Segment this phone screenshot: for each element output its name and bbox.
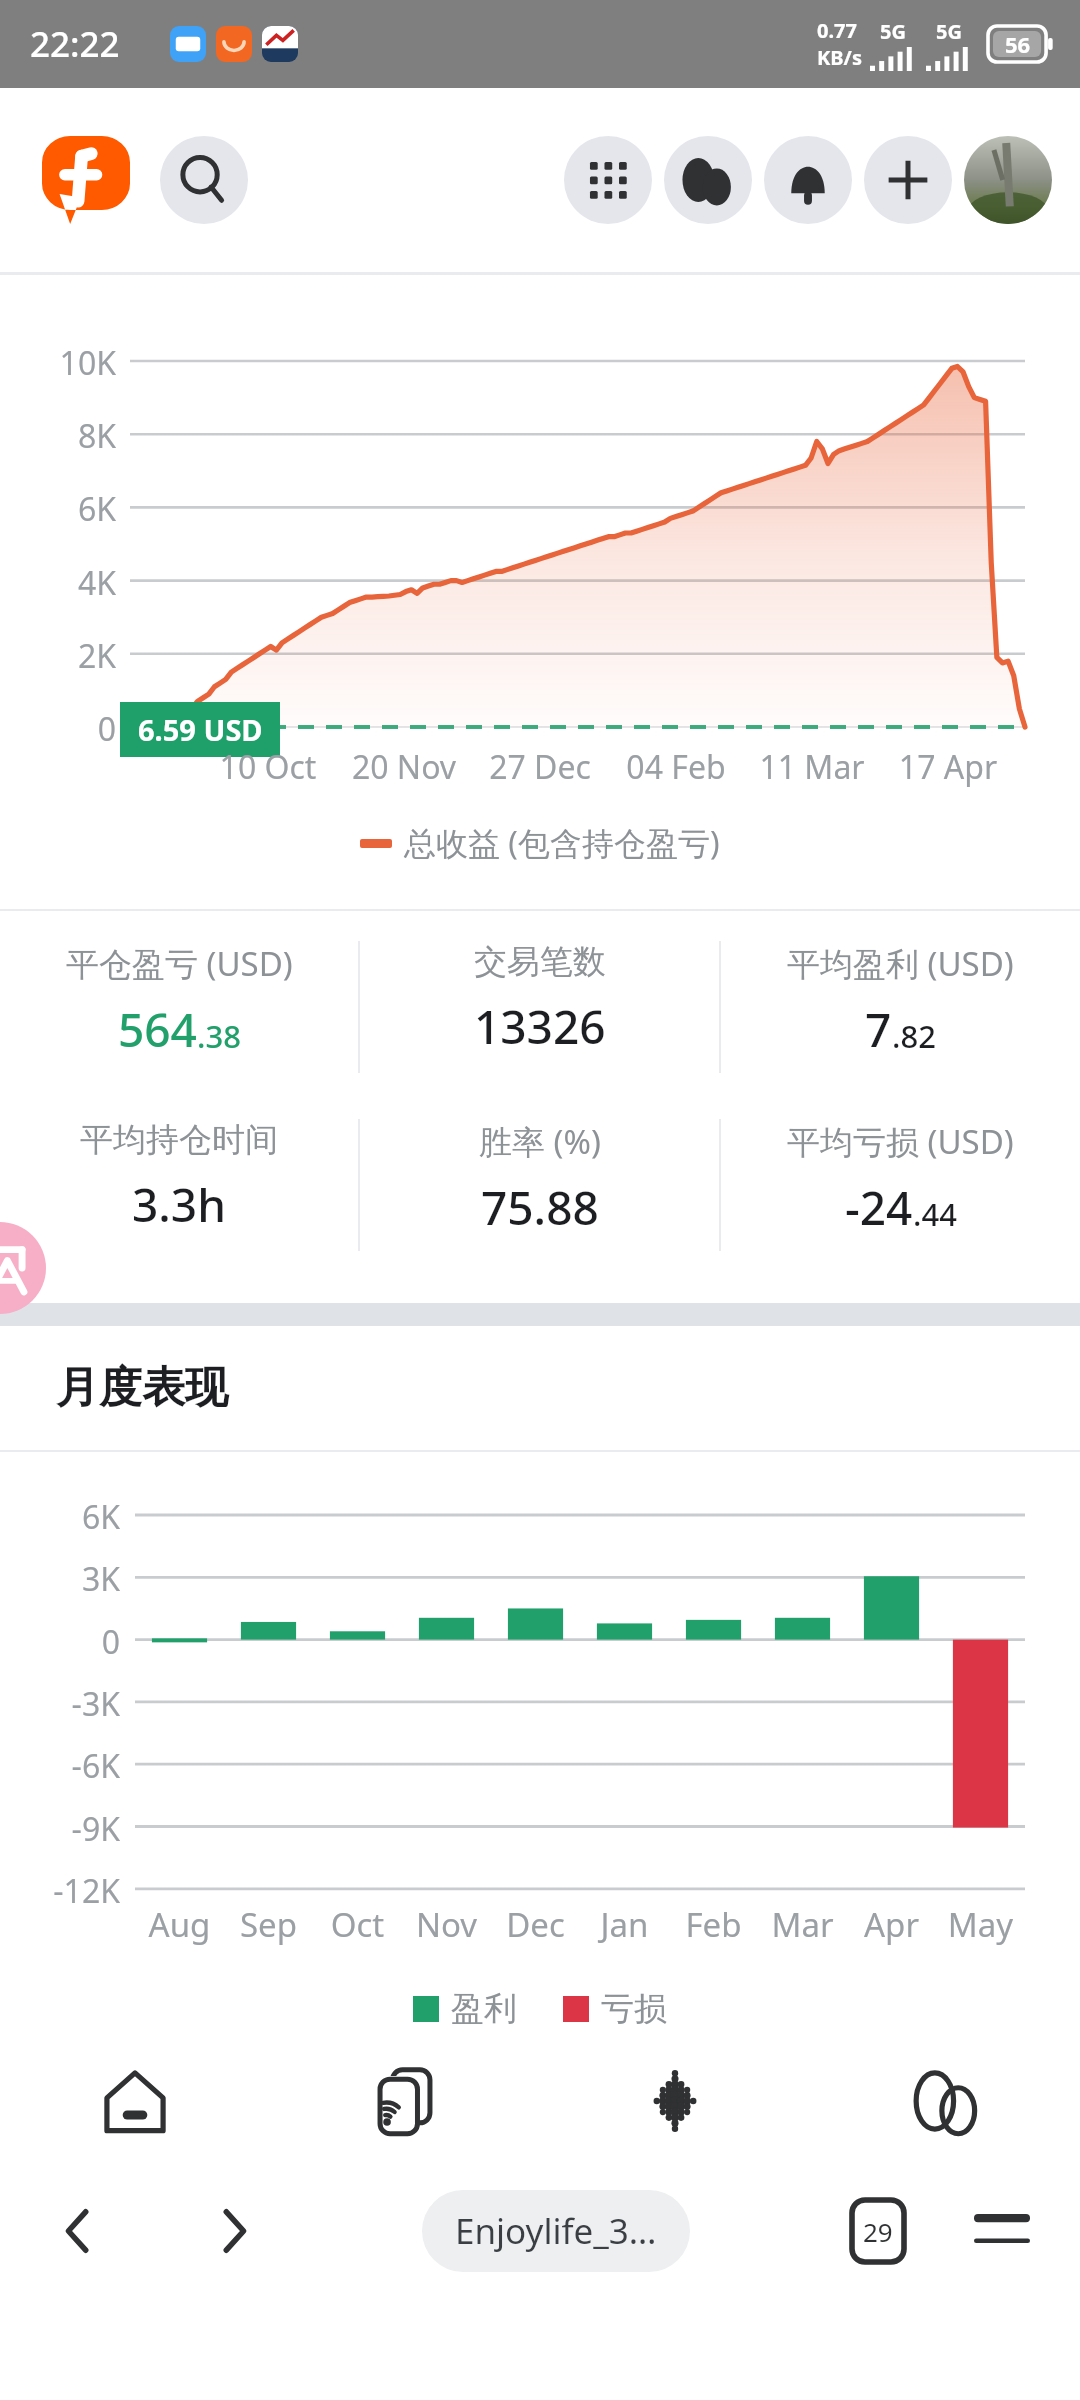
staticText: -24 bbox=[845, 1176, 913, 1239]
staticText: May bbox=[936, 1902, 1025, 1947]
button[interactable]: Reels bbox=[270, 2046, 540, 2156]
button[interactable]: Forward bbox=[184, 2181, 284, 2281]
staticText: 17 Apr bbox=[885, 745, 1011, 789]
button[interactable]: 平仓盈亏 (USD) bbox=[0, 941, 358, 1073]
button[interactable]: Translate bbox=[0, 1222, 46, 1314]
staticText: 7 bbox=[865, 998, 892, 1061]
staticText: 0 bbox=[0, 1620, 120, 1664]
button[interactable]: Home bbox=[0, 2046, 270, 2156]
staticText: 6K bbox=[0, 487, 116, 531]
staticText: 平均盈利 (USD) bbox=[787, 941, 1014, 986]
staticText: Oct bbox=[313, 1902, 402, 1947]
staticText: -12K bbox=[0, 1869, 120, 1913]
staticText: 交易笔数 bbox=[474, 941, 606, 983]
button[interactable]: 盈利 bbox=[413, 1988, 517, 2030]
staticText: 6K bbox=[0, 1495, 120, 1539]
button[interactable]: Menu bbox=[564, 136, 652, 224]
button[interactable]: Profile bbox=[964, 136, 1052, 224]
staticText: 总收益 (包含持仓盈亏) bbox=[404, 821, 720, 865]
staticText: 13326 bbox=[474, 995, 606, 1058]
staticText: 564 bbox=[118, 998, 197, 1061]
staticText: Feb bbox=[669, 1902, 758, 1947]
staticText: 29 bbox=[863, 2214, 893, 2249]
staticText: 月度表现 bbox=[56, 1361, 228, 1415]
staticText: 平均持仓时间 bbox=[80, 1119, 278, 1161]
staticText: 6.59 USD bbox=[138, 710, 263, 749]
button[interactable]: Marketplace bbox=[540, 2046, 810, 2156]
button[interactable]: Messages bbox=[810, 2046, 1080, 2156]
staticText: -6K bbox=[0, 1744, 120, 1788]
button[interactable]: Create bbox=[864, 136, 952, 224]
staticText: 胜率 (%) bbox=[479, 1119, 601, 1164]
staticText: 22:22 bbox=[30, 20, 120, 68]
staticText: 10K bbox=[0, 341, 116, 385]
staticText: 2K bbox=[0, 634, 116, 678]
staticText: Aug bbox=[135, 1902, 224, 1947]
staticText: 平仓盈亏 (USD) bbox=[66, 941, 293, 986]
staticText: Dec bbox=[491, 1902, 580, 1947]
button[interactable]: Enjoylife_3… bbox=[422, 2190, 690, 2272]
button[interactable]: 交易笔数 bbox=[360, 941, 719, 1073]
staticText: 10 Oct bbox=[205, 745, 331, 789]
staticText: 11 Mar bbox=[749, 745, 875, 789]
staticText: .82 bbox=[892, 1015, 936, 1057]
button[interactable]: Tabs bbox=[828, 2181, 928, 2281]
staticText: -9K bbox=[0, 1807, 120, 1851]
button[interactable]: Search bbox=[160, 136, 248, 224]
button[interactable]: Back bbox=[28, 2181, 128, 2281]
staticText: Mar bbox=[758, 1902, 847, 1947]
staticText: 4K bbox=[0, 561, 116, 605]
staticText: 3.3h bbox=[132, 1173, 226, 1236]
staticText: Sep bbox=[224, 1902, 313, 1947]
button[interactable]: Facebook bbox=[42, 136, 130, 224]
staticText: 5G bbox=[936, 18, 962, 45]
button[interactable]: 平均盈利 (USD) bbox=[721, 941, 1080, 1073]
staticText: 20 Nov bbox=[341, 745, 467, 789]
staticText: 75.88 bbox=[481, 1176, 599, 1239]
button[interactable]: 平均亏损 (USD) bbox=[721, 1119, 1080, 1251]
staticText: KB/s bbox=[817, 44, 862, 71]
staticText: 56 bbox=[1005, 29, 1031, 59]
staticText: 3K bbox=[0, 1557, 120, 1601]
staticText: 0.77 bbox=[817, 17, 857, 44]
button[interactable]: 平均持仓时间 bbox=[0, 1119, 358, 1251]
button[interactable]: Messenger bbox=[664, 136, 752, 224]
button[interactable]: Notifications bbox=[764, 136, 852, 224]
staticText: .44 bbox=[913, 1193, 957, 1235]
staticText: 0 bbox=[0, 707, 116, 751]
staticText: 平均亏损 (USD) bbox=[787, 1119, 1014, 1164]
staticText: 盈利 bbox=[451, 1988, 517, 2030]
button[interactable]: 胜率 (%) bbox=[360, 1119, 719, 1251]
staticText: 27 Dec bbox=[477, 745, 603, 789]
button[interactable]: 亏损 bbox=[563, 1988, 667, 2030]
staticText: Enjoylife_3… bbox=[455, 2207, 657, 2255]
staticText: 5G bbox=[880, 18, 906, 45]
staticText: Nov bbox=[402, 1902, 491, 1947]
staticText: 8K bbox=[0, 414, 116, 458]
staticText: 04 Feb bbox=[613, 745, 739, 789]
staticText: Apr bbox=[847, 1902, 936, 1947]
staticText: -3K bbox=[0, 1682, 120, 1726]
button[interactable]: Menu bbox=[952, 2181, 1052, 2281]
button[interactable]: 总收益 (包含持仓盈亏) bbox=[0, 821, 1080, 865]
staticText: .38 bbox=[197, 1015, 241, 1057]
staticText: Jan bbox=[580, 1902, 669, 1947]
staticText: 亏损 bbox=[601, 1988, 667, 2030]
